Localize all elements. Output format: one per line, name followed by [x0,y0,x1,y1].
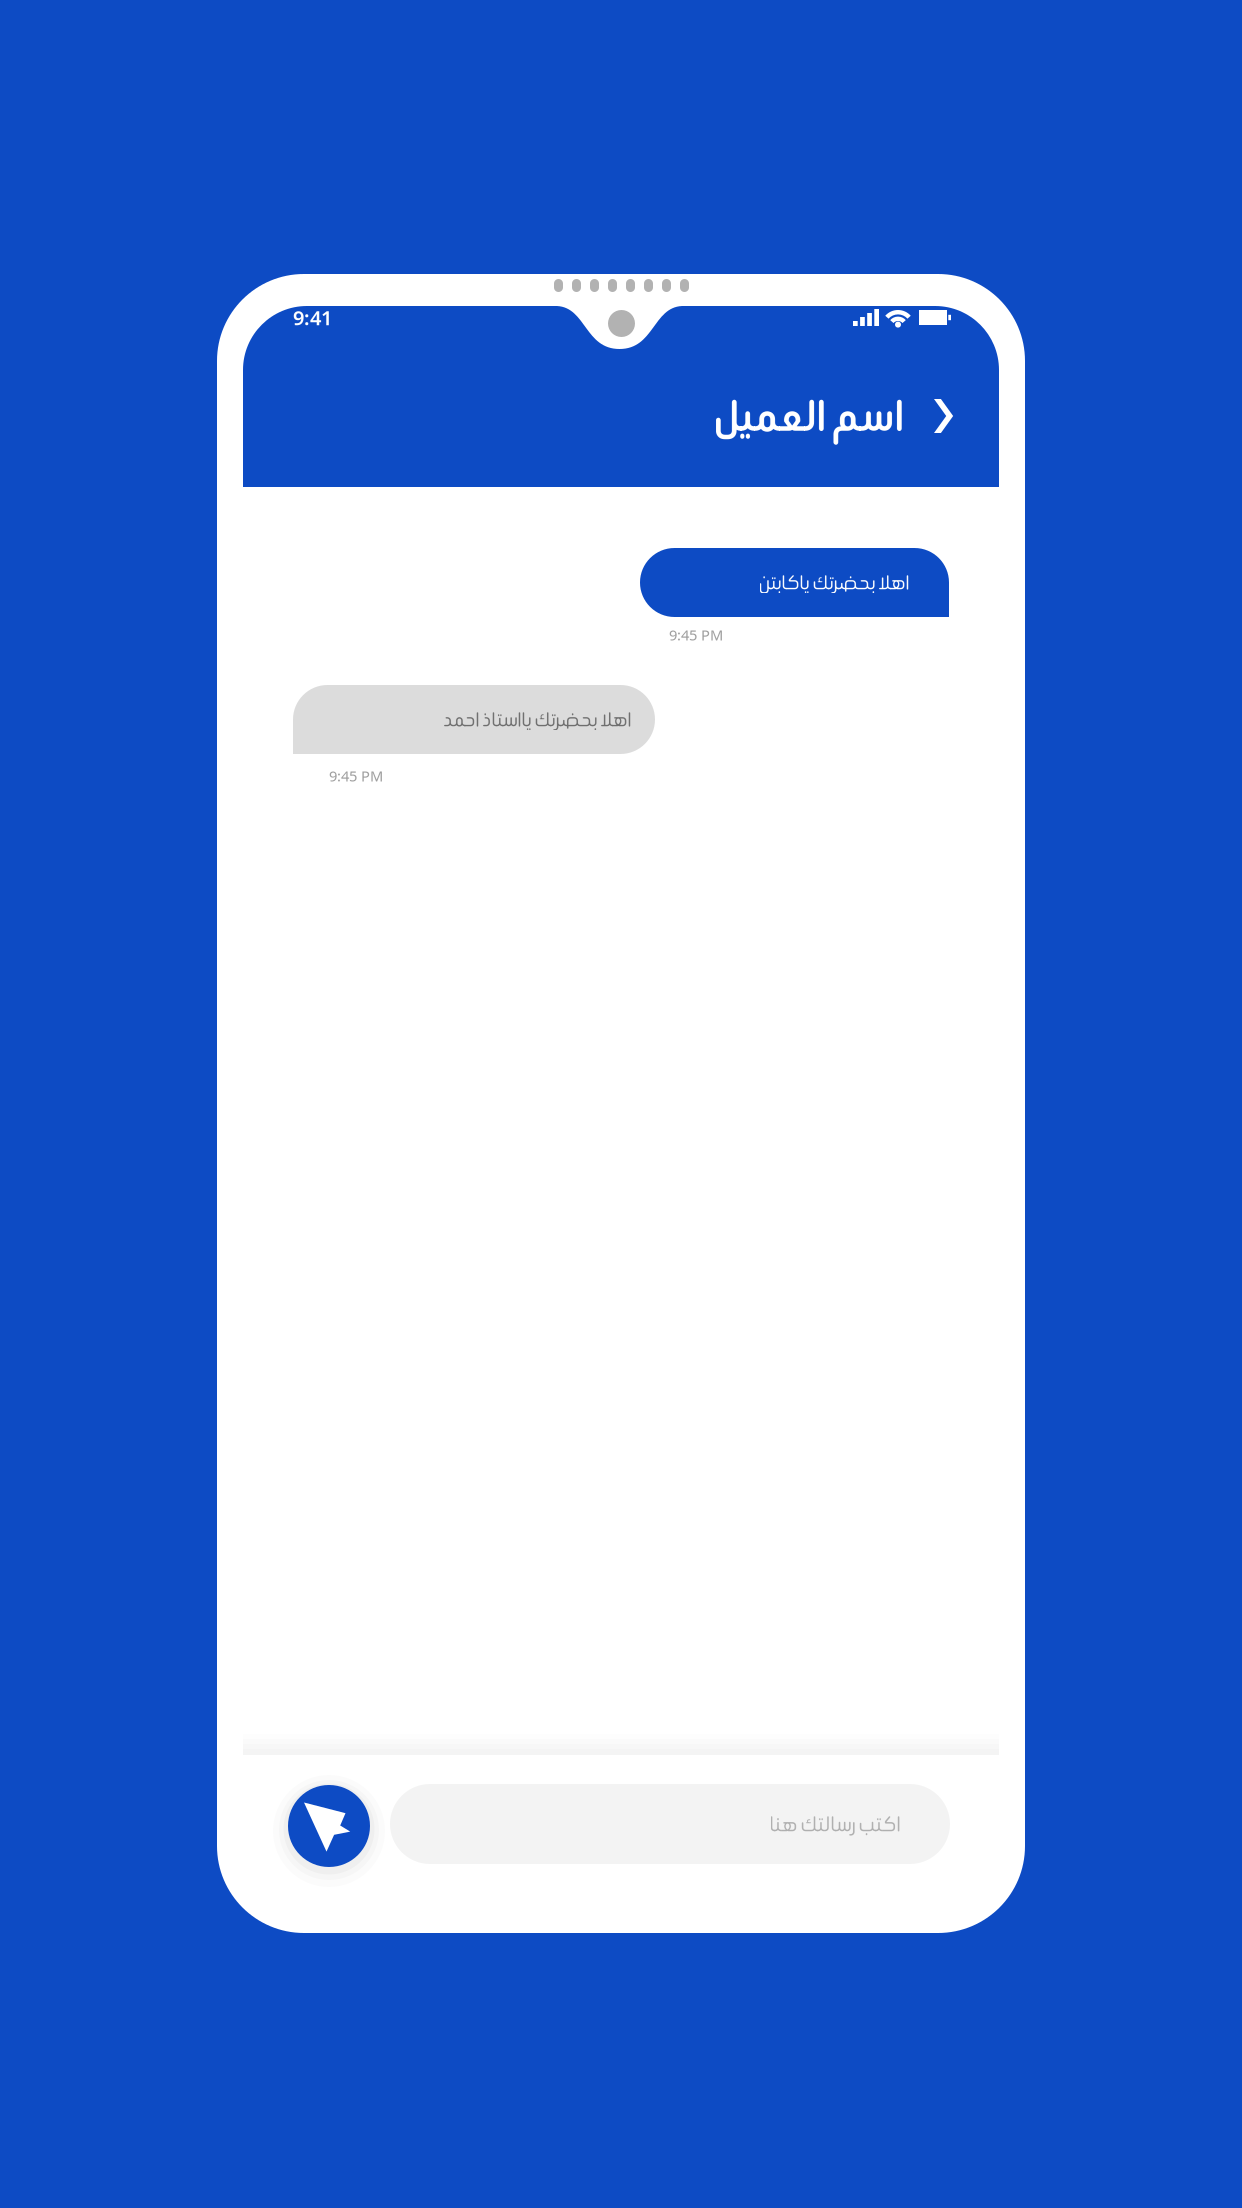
staticText: اهلا بحضرتك ياكابتن [758,569,909,596]
button[interactable]: اكتب رسالتك هنا [390,1784,950,1864]
staticText: 9:41 [293,304,332,331]
button[interactable]: Send message [273,1770,385,1882]
staticText: اسم العميل [713,386,904,446]
staticText: اكتب رسالتك هنا [769,1810,900,1838]
staticText: 9:45 PM [329,766,383,785]
staticText: 9:45 PM [669,625,723,644]
button[interactable]: اسم العميل [697,380,969,452]
staticText: اهلا بحضرتك يااستاذ احمد [443,706,631,733]
